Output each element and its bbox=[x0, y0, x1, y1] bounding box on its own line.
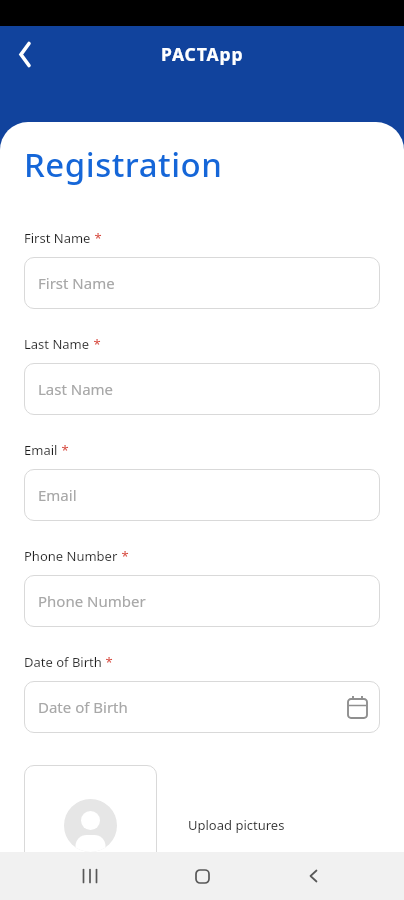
staticText: PACTApp bbox=[161, 42, 244, 66]
staticText: Phone Number bbox=[24, 547, 118, 565]
staticText: * bbox=[58, 441, 69, 459]
staticText: Date of Birth bbox=[24, 653, 102, 671]
staticText: * bbox=[118, 547, 129, 565]
button[interactable]: First Name bbox=[24, 257, 380, 309]
button[interactable] bbox=[24, 765, 157, 885]
button[interactable] bbox=[8, 38, 40, 70]
staticText: Last Name bbox=[38, 379, 368, 399]
staticText: Upload pictures bbox=[188, 816, 285, 834]
staticText: Email bbox=[38, 485, 368, 505]
button[interactable]: Phone Number bbox=[24, 575, 380, 627]
staticText: First Name bbox=[38, 273, 368, 293]
button[interactable] bbox=[302, 864, 326, 888]
staticText: First Name bbox=[24, 229, 91, 247]
staticText: Last Name bbox=[24, 335, 90, 353]
button[interactable]: Last Name bbox=[24, 363, 380, 415]
staticText: Registration bbox=[24, 142, 223, 187]
staticText: Phone Number bbox=[38, 591, 368, 611]
button[interactable]: Date of Birth bbox=[24, 681, 380, 733]
button[interactable] bbox=[190, 864, 214, 888]
staticText: Date of Birth bbox=[38, 697, 347, 717]
button[interactable]: Email bbox=[24, 469, 380, 521]
staticText: * bbox=[102, 653, 113, 671]
staticText: * bbox=[90, 335, 101, 353]
staticText: Email bbox=[24, 441, 58, 459]
button[interactable] bbox=[78, 864, 102, 888]
staticText: * bbox=[91, 229, 102, 247]
